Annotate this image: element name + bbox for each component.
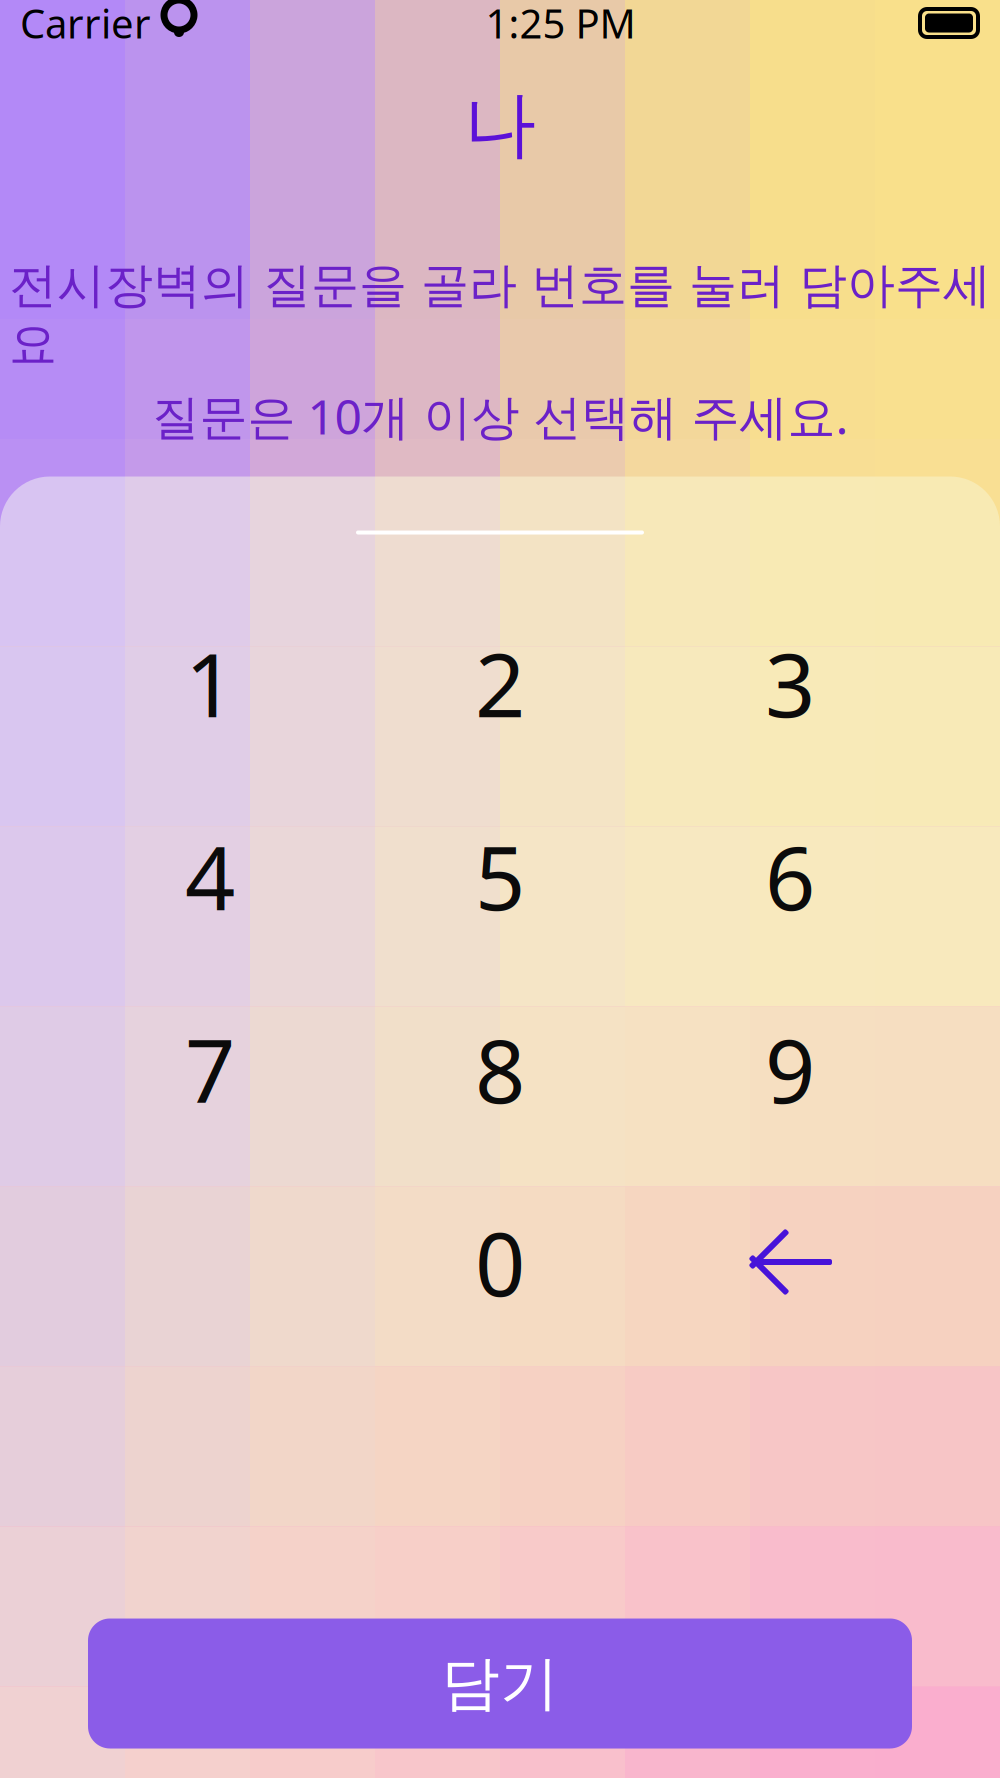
staticText: 5 [475,818,525,934]
staticText: 질문은 10개 이상 선택해 주세요. [151,384,848,448]
button[interactable]: 3 [690,608,890,758]
button[interactable]: 4 [110,801,310,951]
button[interactable]: 담기 [88,1618,912,1748]
button[interactable]: 9 [690,994,890,1144]
staticText: 6 [765,818,815,934]
staticText: 전시장벽의 질문을 골라 번호를 눌러 담아주세요 [9,256,991,374]
staticText: 0 [475,1204,525,1320]
staticText: 나 [464,81,536,169]
staticText: 4 [185,818,235,934]
button[interactable]: 2 [400,608,600,758]
button[interactable]: 5 [400,801,600,951]
button[interactable]: 8 [400,994,600,1144]
staticText: 담기 [441,1647,559,1720]
staticText: 2 [475,625,525,741]
staticText: 9 [765,1011,815,1127]
button[interactable]: Delete [690,1187,890,1337]
staticText: 3 [765,625,815,741]
button[interactable]: 1 [110,608,310,758]
staticText: 1:25 PM [485,0,635,49]
staticText: 7 [185,1011,235,1127]
staticText: Carrier [20,0,151,49]
staticText: 1 [185,625,235,741]
staticText: 8 [475,1011,525,1127]
button[interactable]: 7 [110,994,310,1144]
button[interactable]: 0 [400,1187,600,1337]
button[interactable]: 6 [690,801,890,951]
